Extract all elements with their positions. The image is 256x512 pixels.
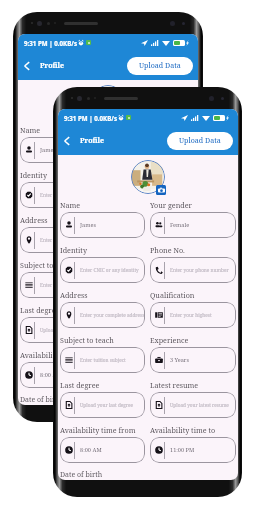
staticText: James xyxy=(40,146,56,154)
button[interactable]: 3 Years xyxy=(110,272,196,298)
button[interactable]: Female xyxy=(150,212,236,238)
staticText: Experience xyxy=(110,260,149,270)
staticText: Availability time to xyxy=(150,425,216,435)
staticText: Availability time from xyxy=(20,350,96,360)
button[interactable]: Enter CNIC or any identity xyxy=(20,182,105,208)
staticText: Date of birth xyxy=(60,470,103,480)
staticText: Enter CNIC or any identity xyxy=(80,267,139,273)
button[interactable]: Change photo xyxy=(156,185,166,195)
button[interactable]: Enter your complete address xyxy=(20,227,105,253)
button[interactable]: Enter CNIC or any identity xyxy=(60,257,145,283)
staticText: 8:00 AM xyxy=(80,446,102,454)
staticText: Upload Data xyxy=(179,136,221,146)
staticText: Identity xyxy=(60,245,87,255)
button[interactable]: Upload your latest resume xyxy=(110,317,196,343)
staticText: Profile xyxy=(80,136,104,146)
staticText: Latest resume xyxy=(110,305,159,315)
staticText: Name xyxy=(20,125,41,135)
button[interactable]: 11:00 PM xyxy=(110,362,196,388)
button[interactable]: Profile photo xyxy=(91,85,125,119)
button[interactable]: Enter your highest qualification xyxy=(150,302,236,328)
staticText: Upload Data xyxy=(139,61,181,71)
button[interactable]: Female xyxy=(110,137,196,163)
button[interactable]: Upload Data xyxy=(167,132,233,150)
staticText: 3 Years xyxy=(170,356,189,364)
staticText: Last degree xyxy=(60,380,100,390)
staticText: Experience xyxy=(150,335,189,345)
button[interactable]: 3 Years xyxy=(150,347,236,373)
button[interactable]: Upload your latest resume xyxy=(150,392,236,418)
staticText: Enter your complete address xyxy=(40,237,105,243)
staticText: Qualification xyxy=(110,215,155,225)
staticText: 9:31 PM | 0.0KB/s xyxy=(64,114,117,122)
staticText: 9:31 PM | 0.0KB/s xyxy=(24,39,77,47)
staticText: Enter your phone number xyxy=(130,192,189,198)
staticText: Enter your highest qualification xyxy=(170,312,236,318)
staticText: Profile xyxy=(40,61,64,71)
staticText: Upload your latest resume xyxy=(130,327,189,333)
staticText: Enter tuition subject xyxy=(40,282,86,288)
staticText: 11:00 PM xyxy=(130,371,155,379)
staticText: Latest resume xyxy=(150,380,199,390)
button[interactable]: 8:00 AM xyxy=(20,362,105,388)
staticText: Upload your latest resume xyxy=(170,402,229,408)
staticText: 3 Years xyxy=(130,281,149,289)
staticText: Enter CNIC or any identity xyxy=(40,192,99,198)
staticText: Phone No. xyxy=(110,170,145,180)
staticText: Your gender xyxy=(150,200,192,210)
staticText: 8:00 AM xyxy=(40,371,62,379)
staticText: Subject to teach xyxy=(60,335,114,345)
staticText: Address xyxy=(20,215,48,225)
staticText: Name xyxy=(60,200,81,210)
button[interactable]: Enter your phone number xyxy=(110,182,196,208)
button[interactable]: Enter your highest qualification xyxy=(110,227,196,253)
staticText: Address xyxy=(60,290,88,300)
staticText: Enter your phone number xyxy=(170,267,229,273)
staticText: Last degree xyxy=(20,305,60,315)
staticText: Identity xyxy=(20,170,47,180)
staticText: 11:00 PM xyxy=(170,446,195,454)
staticText: Subject to teach xyxy=(20,260,74,270)
staticText: Availability time to xyxy=(110,350,176,360)
staticText: Date of birth xyxy=(20,395,63,405)
staticText: Qualification xyxy=(150,290,195,300)
button[interactable]: Upload your last degree xyxy=(60,392,145,418)
staticText: Enter your highest qualification xyxy=(130,237,196,243)
staticText: Availability time from xyxy=(60,425,136,435)
button[interactable]: Enter tuition subject xyxy=(20,272,105,298)
button[interactable]: Upload your last degree xyxy=(20,317,105,343)
button[interactable]: 8:00 AM xyxy=(60,437,145,463)
button[interactable]: Change photo xyxy=(116,110,126,120)
staticText: James xyxy=(80,221,96,229)
staticText: Enter tuition subject xyxy=(80,357,126,363)
button[interactable]: Enter your phone number xyxy=(150,257,236,283)
button[interactable]: Upload Data xyxy=(127,57,193,75)
button[interactable]: Back xyxy=(19,58,35,74)
staticText: Female xyxy=(170,221,190,229)
button[interactable]: Back xyxy=(59,133,75,149)
staticText: Enter your complete address xyxy=(80,312,145,318)
button[interactable]: 11:00 PM xyxy=(150,437,236,463)
staticText: Upload your last degree xyxy=(80,402,134,408)
button[interactable]: Profile photo xyxy=(131,160,165,194)
staticText: Upload your last degree xyxy=(40,327,94,333)
staticText: Phone No. xyxy=(150,245,185,255)
button[interactable]: Enter your complete address xyxy=(60,302,145,328)
button[interactable]: Enter tuition subject xyxy=(60,347,145,373)
button[interactable]: James xyxy=(60,212,145,238)
button[interactable]: James xyxy=(20,137,105,163)
